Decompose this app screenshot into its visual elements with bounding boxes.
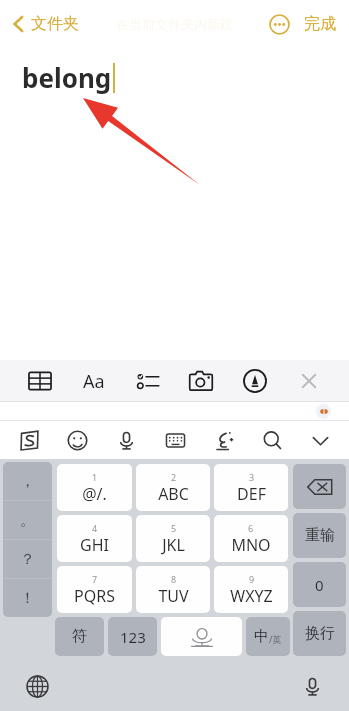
staticText: 在当前文件夹内新建 — [116, 16, 233, 32]
staticText: 4 — [92, 522, 98, 534]
button[interactable]: 123 — [108, 617, 157, 656]
staticText: 123 — [120, 627, 146, 647]
staticText: ？ — [20, 550, 35, 569]
button[interactable]: ？ — [3, 540, 52, 578]
button[interactable]: 收起 — [300, 422, 340, 458]
button[interactable]: ！ — [3, 579, 52, 617]
button[interactable]: 6 — [214, 515, 288, 562]
staticText: GHI — [80, 534, 109, 556]
button[interactable]: 空格 — [161, 617, 242, 656]
button[interactable]: 重输 — [293, 513, 346, 558]
button[interactable]: 清单 — [128, 361, 168, 401]
staticText: WXYZ — [230, 585, 273, 607]
staticText: ABC — [158, 483, 189, 505]
staticText: TUV — [158, 585, 189, 607]
button[interactable]: 中 — [246, 617, 290, 656]
button[interactable]: 9 — [214, 566, 288, 613]
button[interactable]: ， — [3, 462, 52, 500]
button[interactable]: 相机 — [181, 361, 221, 401]
button[interactable]: 1 — [57, 464, 132, 511]
button[interactable]: 键盘 — [155, 422, 195, 458]
staticText: DEF — [237, 483, 266, 505]
staticText: 换行 — [305, 624, 335, 643]
staticText: 0 — [315, 575, 324, 595]
button[interactable]: 8 — [136, 566, 210, 613]
button[interactable]: 手写 — [235, 361, 275, 401]
button[interactable]: 2 — [136, 464, 210, 511]
staticText: 5 — [171, 522, 177, 534]
staticText: @/. — [82, 483, 107, 505]
staticText: Aa — [83, 369, 105, 394]
staticText: MNO — [231, 534, 271, 556]
button[interactable]: 语音输入 — [293, 667, 331, 705]
button[interactable]: 语音 — [106, 422, 146, 458]
staticText: 6 — [248, 522, 254, 534]
button[interactable]: 删除 — [293, 464, 346, 509]
button[interactable]: Aa — [74, 361, 114, 401]
staticText: 8 — [171, 573, 177, 585]
staticText: 3 — [249, 471, 255, 483]
button[interactable]: 关闭 — [289, 361, 329, 401]
staticText: belong — [22, 60, 112, 95]
staticText: ， — [20, 472, 35, 491]
button[interactable]: 表情 — [57, 422, 97, 458]
button[interactable]: 3 — [214, 464, 288, 511]
button[interactable]: 0 — [293, 562, 346, 607]
button[interactable]: 完成 — [301, 10, 339, 38]
button[interactable]: 更多 — [264, 9, 294, 39]
button[interactable]: 表格 — [20, 361, 60, 401]
button[interactable]: 。 — [3, 501, 52, 539]
staticText: 9 — [249, 573, 255, 585]
button[interactable]: 7 — [57, 566, 132, 613]
staticText: 完成 — [304, 14, 336, 34]
staticText: PQRS — [74, 585, 115, 607]
staticText: 2 — [171, 471, 177, 483]
button[interactable]: 符 — [55, 617, 104, 656]
button[interactable]: 文件夹 — [8, 10, 83, 38]
staticText: /英 — [269, 633, 282, 645]
staticText: 文件夹 — [31, 14, 79, 34]
staticText: 1 — [92, 471, 98, 483]
staticText: ！ — [20, 589, 35, 608]
staticText: JKL — [162, 534, 185, 556]
staticText: 。 — [20, 511, 35, 530]
button[interactable]: 手写 — [203, 422, 243, 458]
button[interactable]: 换行 — [293, 611, 346, 656]
button[interactable]: 4 — [57, 515, 132, 562]
staticText: 符 — [72, 627, 87, 646]
button[interactable]: 输入法 — [9, 422, 49, 458]
staticText: 7 — [92, 573, 98, 585]
staticText: 中 — [254, 627, 269, 646]
button[interactable]: 5 — [136, 515, 210, 562]
button[interactable]: 切换输入法 — [18, 667, 56, 705]
staticText: 重输 — [305, 526, 335, 545]
button[interactable]: 搜索 — [252, 422, 292, 458]
button[interactable]: 皮肤 — [316, 404, 331, 419]
